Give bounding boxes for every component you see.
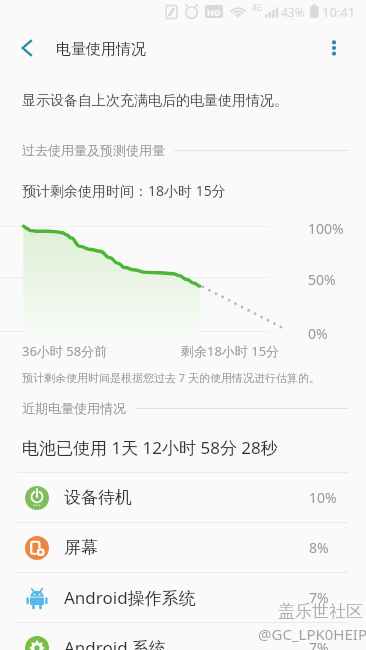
staticText: 预计剩余使用时间：18小时 15分 <box>22 181 226 200</box>
staticText: 7% <box>309 588 329 607</box>
staticText: Android 系统 <box>64 636 167 650</box>
staticText: 显示设备自上次充满电后的电量使用情况。 <box>22 92 288 110</box>
staticText: 4G <box>252 2 263 13</box>
button[interactable]: 设备待机 <box>0 473 366 522</box>
staticText: 0% <box>308 324 328 343</box>
staticText: Android操作系统 <box>64 586 196 609</box>
button[interactable]: More options <box>312 26 356 70</box>
staticText: 36小时 58分前 <box>22 342 108 360</box>
staticText: 10:41 <box>322 3 356 21</box>
button[interactable]: Android 系统 <box>0 623 366 650</box>
staticText: 7% <box>309 638 329 650</box>
staticText: 10% <box>309 488 337 507</box>
button[interactable]: Android操作系统 <box>0 573 366 622</box>
staticText: 剩余18小时 15分 <box>181 342 280 360</box>
staticText: 过去使用量及预测使用量 <box>22 142 165 158</box>
staticText: 预计剩余使用时间是根据您过去 7 天的使用情况进行估算的。 <box>22 370 321 385</box>
staticText: 电量使用情况 <box>56 40 146 59</box>
staticText: 近期电量使用情况 <box>22 400 126 416</box>
staticText: 100% <box>308 219 344 238</box>
staticText: 盖乐世社区 <box>278 601 363 622</box>
staticText: HD <box>207 6 221 18</box>
button[interactable]: 屏幕 <box>0 523 366 572</box>
staticText: 设备待机 <box>64 487 132 508</box>
staticText: 43% <box>281 4 305 20</box>
staticText: @GC_LPK0HEIP <box>258 624 366 644</box>
staticText: 电池已使用 1天 12小时 58分 28秒 <box>22 436 278 459</box>
staticText: 50% <box>308 270 336 289</box>
staticText: 屏幕 <box>64 537 98 558</box>
button[interactable]: Back <box>5 26 49 70</box>
staticText: 8% <box>309 538 329 557</box>
